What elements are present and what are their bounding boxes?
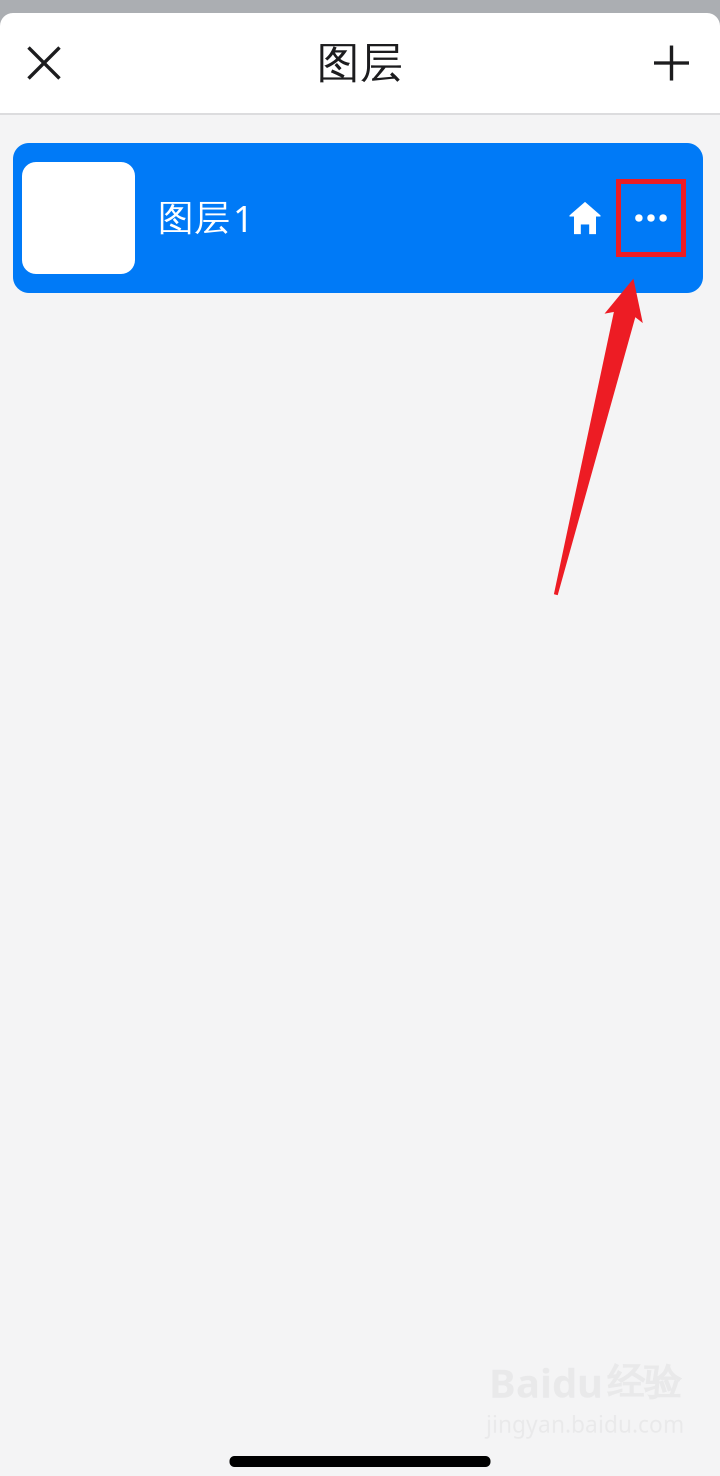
staticText: 经验	[607, 1359, 681, 1405]
button[interactable]: Close	[0, 13, 88, 113]
button[interactable]: Add layer	[623, 13, 720, 113]
button[interactable]: Layer options	[618, 181, 684, 254]
staticText: 图层	[158, 196, 230, 240]
staticText: 图层	[317, 37, 403, 89]
staticText: 1	[233, 194, 254, 242]
staticText: jingyan.baidu.com	[486, 1409, 684, 1439]
staticText: Baidu	[489, 1356, 603, 1409]
button[interactable]: 图层	[13, 143, 703, 293]
button[interactable]: Set as home layer	[552, 181, 618, 255]
